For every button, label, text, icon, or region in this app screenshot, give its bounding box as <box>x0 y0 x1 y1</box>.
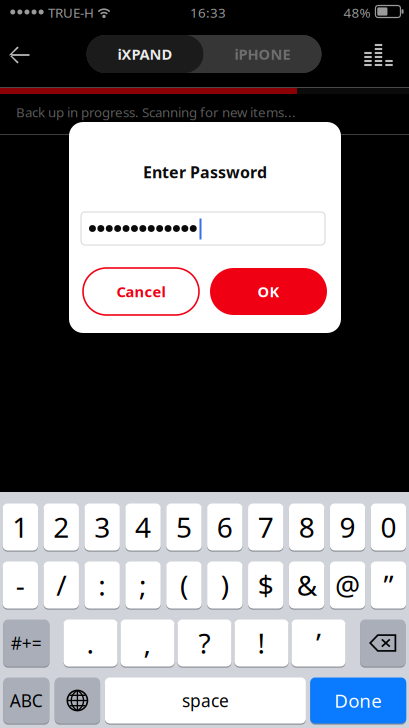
staticText: $ <box>258 566 274 604</box>
staticText: 5 <box>176 508 192 546</box>
staticText: space <box>182 689 229 712</box>
staticText: ( <box>180 566 188 604</box>
staticText: 4 <box>135 508 151 546</box>
button[interactable]: 5 <box>166 503 202 551</box>
button[interactable]: Cancel <box>83 268 199 315</box>
button[interactable]: iPHONE <box>203 35 321 73</box>
staticText: 6 <box>217 508 233 546</box>
button[interactable]: ! <box>234 619 288 667</box>
staticText: iXPAND <box>117 44 172 64</box>
button[interactable]: Done <box>310 677 406 724</box>
staticText: Done <box>334 688 382 713</box>
staticText: Cancel <box>116 282 165 301</box>
staticText: 8 <box>299 508 315 546</box>
button[interactable]: ” <box>371 561 406 609</box>
staticText: ; <box>139 566 147 604</box>
staticText: TRUE-H <box>48 4 94 21</box>
staticText: 0 <box>380 508 396 546</box>
button[interactable]: space <box>105 677 306 724</box>
staticText: - <box>16 566 25 604</box>
button[interactable]: / <box>44 561 79 609</box>
button[interactable]: - <box>3 561 38 609</box>
staticText: , <box>143 624 151 662</box>
button[interactable]: 6 <box>207 503 243 551</box>
staticText: @ <box>335 566 360 604</box>
staticText: Enter Password <box>143 161 267 183</box>
button[interactable]: ? <box>177 619 231 667</box>
button[interactable]: @ <box>330 561 365 609</box>
staticText: 7 <box>258 508 274 546</box>
button[interactable]: 1 <box>3 503 38 551</box>
button[interactable]: ’ <box>291 619 345 667</box>
button[interactable]: Equaliser <box>351 32 403 78</box>
button[interactable]: ABC <box>3 677 49 724</box>
staticText: 2 <box>53 508 69 546</box>
button[interactable]: Switch keyboard <box>55 677 100 724</box>
staticText: ABC <box>10 689 43 712</box>
button[interactable]: Delete <box>360 619 405 667</box>
button[interactable]: Back <box>0 32 44 78</box>
staticText: ’ <box>316 624 321 662</box>
button[interactable]: & <box>289 561 324 609</box>
staticText: & <box>297 566 317 604</box>
staticText: iPHONE <box>234 44 290 64</box>
button[interactable]: 0 <box>371 503 406 551</box>
button[interactable]: , <box>120 619 174 667</box>
staticText: . <box>86 624 94 662</box>
button[interactable]: 9 <box>330 503 365 551</box>
button[interactable]: 7 <box>248 503 283 551</box>
staticText: Back up in progress. Scanning for new it… <box>16 103 296 121</box>
button[interactable]: 2 <box>44 503 79 551</box>
staticText: ) <box>221 566 229 604</box>
staticText: 48% <box>343 4 370 21</box>
staticText: : <box>98 566 106 604</box>
button[interactable]: ( <box>166 561 202 609</box>
button[interactable]: 8 <box>289 503 324 551</box>
staticText: 9 <box>340 508 356 546</box>
button[interactable]: ; <box>125 561 161 609</box>
staticText: #+= <box>11 631 42 654</box>
button[interactable]: OK <box>210 268 327 315</box>
button[interactable]: #+= <box>3 619 49 667</box>
button[interactable]: 3 <box>84 503 120 551</box>
staticText: ? <box>198 624 210 662</box>
staticText: ! <box>257 624 265 662</box>
staticText: ” <box>383 566 393 604</box>
button[interactable]: . <box>63 619 117 667</box>
button[interactable]: iXPAND <box>86 35 203 73</box>
staticText: 1 <box>12 508 28 546</box>
staticText: OK <box>257 282 279 301</box>
button[interactable]: 4 <box>125 503 161 551</box>
button[interactable]: ) <box>207 561 243 609</box>
button[interactable]: : <box>84 561 120 609</box>
staticText: 3 <box>94 508 110 546</box>
staticText: / <box>56 566 66 604</box>
button[interactable]: $ <box>248 561 283 609</box>
staticText: 16:33 <box>190 4 226 21</box>
